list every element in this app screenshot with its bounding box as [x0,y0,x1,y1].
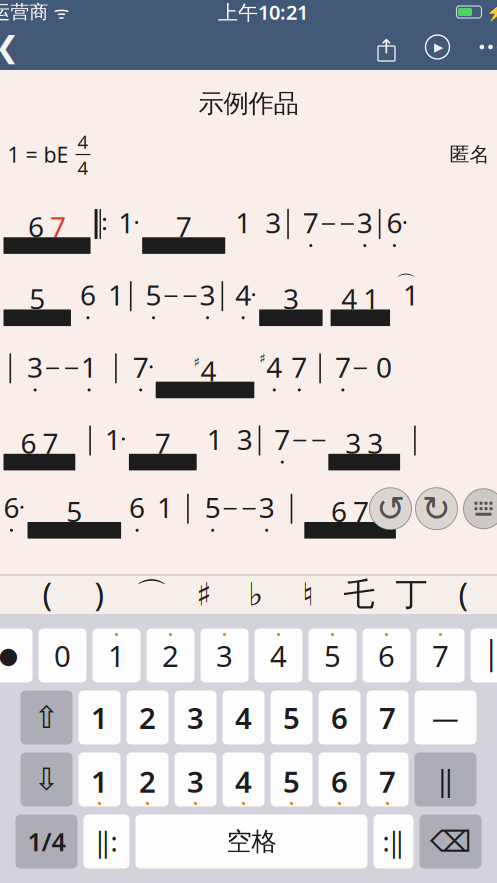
button[interactable]: 1/4 [15,814,77,868]
button[interactable]: 符号 ( [437,575,489,613]
button[interactable]: 4 [222,752,264,806]
button[interactable]: 3 [174,752,216,806]
staticText: 7 [50,208,66,245]
staticText: 1 [108,276,124,313]
button[interactable]: 5 [270,752,312,806]
button[interactable]: 分享 [361,24,411,70]
button[interactable]: 符号 ♭ [229,575,281,613]
button[interactable]: 符号 ♯ [177,575,229,613]
button[interactable]: 撤销 [369,488,411,530]
staticText: ↻ [422,489,451,528]
staticText: 6 [331,762,348,801]
button[interactable]: 5 [270,690,312,744]
staticText: 4 [77,129,88,154]
staticText: 1 [207,420,223,458]
button[interactable]: 符号 丁 [385,575,437,613]
staticText: 3 [357,204,373,241]
staticText: 4 [235,276,251,313]
staticText: ♯ [259,351,265,366]
button[interactable]: 7 [366,690,408,744]
staticText: 3 [259,489,275,526]
staticText: 4 [77,155,88,180]
staticText: 1 [91,698,108,737]
button[interactable]: 播放 [411,24,463,70]
button[interactable]: 符号 ) [73,575,125,613]
button[interactable]: ‖ [414,752,476,806]
staticText: 3 [27,348,43,385]
staticText: │ [483,640,497,671]
staticText: 4 [266,348,282,385]
staticText: ᯤ [48,0,69,23]
button[interactable]: 6 [318,690,360,744]
button[interactable]: ‖: [83,814,129,868]
button[interactable]: 6 [318,752,360,806]
button[interactable]: 2 [126,752,168,806]
staticText: ⌒ [135,575,167,614]
staticText: 3 [187,762,204,801]
button[interactable]: — [414,690,476,744]
button[interactable]: ● [0,628,32,682]
button[interactable]: 2 [126,690,168,744]
staticText: :‖ [382,824,404,859]
staticText: 匿名 [449,142,489,167]
button[interactable]: 5 [308,628,356,682]
button[interactable]: 7 [416,628,464,682]
button[interactable]: 符号 乇 [333,575,385,613]
staticText: 7 [155,424,171,461]
staticText: 1/4 [27,825,65,858]
button[interactable]: 6 [362,628,410,682]
button[interactable]: 3 [200,628,248,682]
button[interactable]: ⇧ [20,690,72,744]
staticText: 7 [42,424,58,461]
staticText: 1 [105,420,121,458]
staticText: 1 [91,762,108,801]
staticText: 4 [270,636,287,675]
staticText: ‖ [437,760,453,799]
staticText: 1 [108,636,125,675]
staticText: 1 [81,348,97,385]
button[interactable]: 1 [78,752,120,806]
button[interactable]: 符号 ♮ [281,575,333,613]
button[interactable]: │ [470,628,497,682]
staticText: 7 [432,636,449,675]
button[interactable]: 空格 [135,814,367,868]
staticText: ❮ [0,30,20,64]
staticText: 1 [363,280,379,317]
button[interactable]: 1 [92,628,140,682]
button[interactable]: 2 [146,628,194,682]
staticText: ▶ [434,40,443,54]
button[interactable]: 隐藏键盘 [463,489,497,529]
button[interactable]: 4 [222,690,264,744]
staticText: 1 [118,204,134,241]
button[interactable]: 符号 ⌒ [125,575,177,613]
button[interactable]: 重做 [415,488,457,530]
staticText: 0 [54,636,71,675]
staticText: 6 [331,698,348,737]
staticText: 4 [200,352,216,389]
staticText: 6 [378,636,395,675]
button[interactable]: 返回 [0,24,35,70]
button[interactable]: 符号 ( [21,575,73,613]
staticText: 示例作品 [198,88,298,119]
button[interactable]: 0 [38,628,86,682]
button[interactable]: 1 [78,690,120,744]
button[interactable]: 7 [366,752,408,806]
button[interactable]: 4 [254,628,302,682]
staticText: 上午10:21 [218,0,308,25]
staticText: ↺ [376,489,405,528]
staticText: 5 [145,276,161,313]
staticText: ⌫ [430,825,471,858]
staticText: 3 [367,424,383,461]
staticText: 5 [205,489,221,526]
button[interactable]: 3 [174,690,216,744]
staticText: 6 [386,204,402,241]
staticText: ( [458,573,468,616]
staticText: — [432,700,459,735]
button[interactable]: ⇩ [20,752,72,806]
button[interactable]: 删除 [419,814,481,868]
staticText: 6 [80,276,96,313]
button[interactable]: :‖ [373,814,413,868]
button[interactable]: 更多 [463,24,497,70]
staticText: 乇 [343,575,375,614]
staticText: 3 [199,276,215,313]
